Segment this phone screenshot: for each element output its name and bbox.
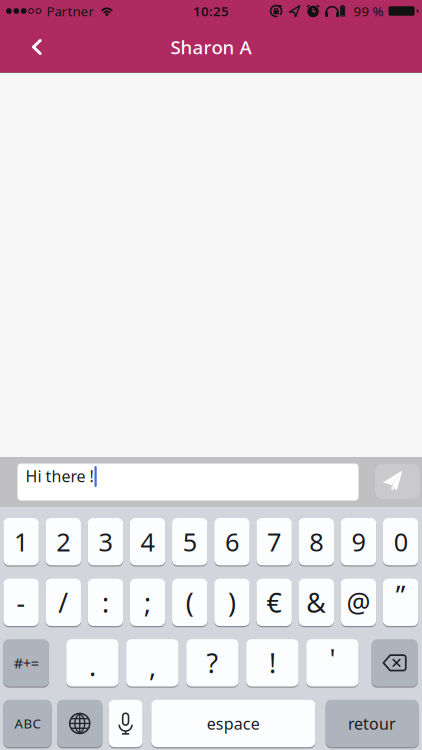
staticText: €: [267, 585, 282, 620]
staticText: retour: [348, 713, 396, 734]
button[interactable]: Hi there !: [17, 463, 358, 500]
button[interactable]: €: [256, 578, 292, 627]
staticText: .: [89, 648, 96, 683]
button[interactable]: [109, 699, 143, 748]
staticText: &: [306, 585, 326, 620]
staticText: espace: [207, 713, 260, 734]
button[interactable]: 5: [172, 517, 207, 566]
staticText: (: [186, 585, 194, 620]
staticText: ): [228, 585, 236, 620]
staticText: :: [102, 585, 109, 620]
button[interactable]: ;: [130, 578, 165, 627]
staticText: -: [17, 585, 26, 620]
button[interactable]: !: [246, 638, 299, 687]
staticText: !: [269, 645, 276, 680]
button[interactable]: 8: [299, 517, 334, 566]
button[interactable]: 4: [130, 517, 165, 566]
button[interactable]: 0: [383, 517, 418, 566]
button[interactable]: ?: [186, 638, 239, 687]
staticText: ABC: [14, 715, 40, 732]
staticText: ?: [206, 645, 218, 680]
button[interactable]: ': [306, 638, 359, 687]
button[interactable]: ,: [126, 638, 179, 687]
staticText: ;: [144, 585, 151, 620]
button[interactable]: retour: [326, 699, 419, 748]
button[interactable]: 2: [46, 517, 81, 566]
staticText: 6: [225, 525, 239, 558]
staticText: 2: [56, 525, 70, 558]
staticText: 4: [141, 525, 155, 558]
button[interactable]: #+=: [3, 638, 49, 687]
staticText: Hi there !: [25, 465, 93, 487]
button[interactable]: espace: [151, 699, 315, 748]
button[interactable]: 9: [341, 517, 376, 566]
staticText: 3: [98, 525, 112, 558]
button[interactable]: 7: [256, 517, 292, 566]
staticText: 7: [267, 525, 281, 558]
button[interactable]: ): [214, 578, 250, 627]
staticText: ”: [396, 578, 406, 613]
button[interactable]: .: [66, 638, 119, 687]
button[interactable]: (: [172, 578, 207, 627]
staticText: 8: [309, 525, 323, 558]
button[interactable]: @: [341, 578, 376, 627]
staticText: 99 %: [354, 2, 384, 20]
staticText: Partner: [46, 2, 94, 20]
staticText: 10:25: [193, 2, 229, 20]
button[interactable]: [0, 23, 42, 71]
staticText: ,: [149, 648, 156, 683]
button[interactable]: ”: [383, 578, 418, 627]
staticText: @: [346, 585, 370, 620]
staticText: 0: [394, 525, 408, 558]
button[interactable]: 3: [88, 517, 123, 566]
button[interactable]: :: [88, 578, 123, 627]
button[interactable]: [375, 464, 420, 499]
button[interactable]: &: [299, 578, 334, 627]
button[interactable]: [372, 638, 418, 687]
staticText: ': [329, 641, 335, 676]
button[interactable]: ABC: [3, 699, 52, 748]
staticText: /: [58, 585, 68, 620]
staticText: 1: [14, 525, 28, 558]
button[interactable]: /: [46, 578, 81, 627]
staticText: #+=: [14, 653, 39, 673]
button[interactable]: -: [3, 578, 39, 627]
staticText: 5: [183, 525, 197, 558]
staticText: 9: [351, 525, 365, 558]
button[interactable]: 1: [3, 517, 39, 566]
button[interactable]: [57, 699, 102, 748]
staticText: Sharon A: [170, 35, 251, 59]
button[interactable]: 6: [214, 517, 250, 566]
